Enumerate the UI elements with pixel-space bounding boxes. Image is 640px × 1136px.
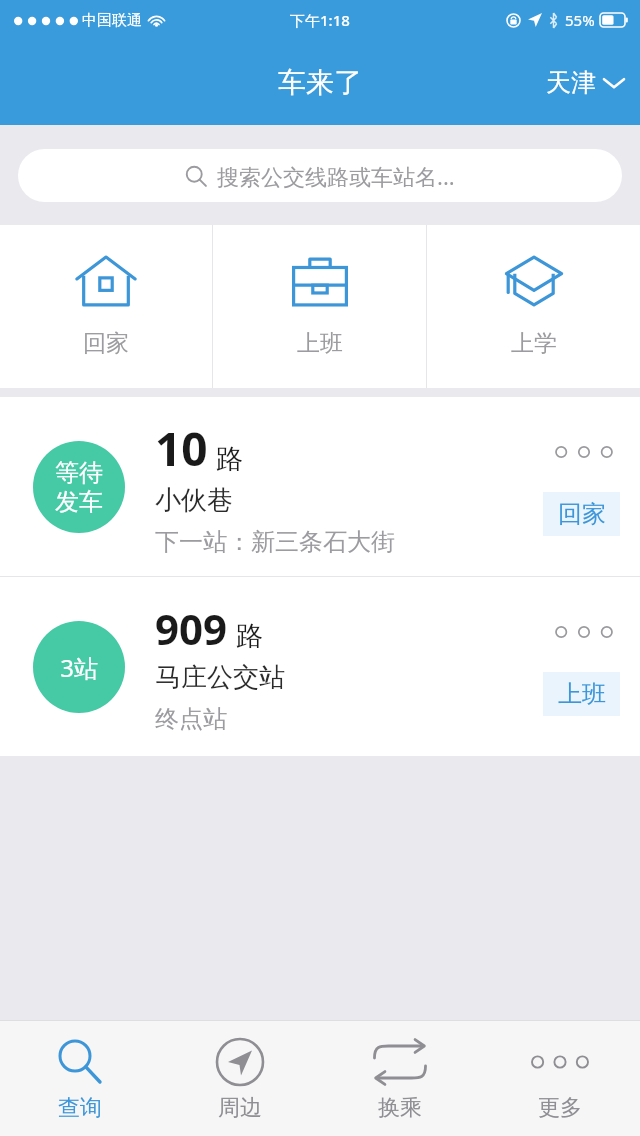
staticText: 天津	[546, 67, 596, 98]
staticText: 小伙巷	[155, 484, 233, 517]
button[interactable]: 上班	[543, 672, 620, 716]
staticText: 下一站：新三条石大街	[155, 527, 395, 557]
staticText: 查询	[58, 1094, 102, 1122]
staticText: 55%	[565, 10, 595, 30]
staticText: 路	[236, 619, 263, 653]
staticText: 终点站	[155, 704, 227, 734]
staticText: 909	[155, 600, 228, 657]
staticText: 等待 发车	[55, 458, 103, 517]
button[interactable]: 等待 发车	[0, 397, 640, 576]
button[interactable]: Go home	[0, 225, 212, 388]
staticText: 上学	[511, 329, 557, 358]
staticText: 下午1:18	[290, 10, 350, 30]
staticText: 上班	[558, 679, 606, 709]
button[interactable]: 周边	[160, 1021, 320, 1136]
staticText: 回家	[83, 329, 129, 358]
button[interactable]: 回家	[543, 492, 620, 536]
staticText: 更多	[538, 1094, 582, 1122]
staticText: 路	[216, 442, 243, 476]
button[interactable]: 搜索公交线路或车站名...	[18, 149, 622, 202]
button[interactable]: 查询	[0, 1021, 160, 1136]
staticText: 上班	[297, 329, 343, 358]
staticText: 3站	[60, 651, 98, 684]
button[interactable]: 天津	[530, 57, 640, 108]
staticText: 换乘	[378, 1094, 422, 1122]
button[interactable]: Go to work	[213, 225, 426, 388]
staticText: 车来了	[278, 65, 362, 100]
staticText: 10	[155, 417, 208, 480]
staticText: 马庄公交站	[155, 661, 285, 694]
button[interactable]: 更多	[480, 1021, 640, 1136]
button[interactable]: More options	[548, 438, 620, 466]
button[interactable]: Go to school	[427, 225, 640, 388]
staticText: 中国联通	[82, 11, 142, 30]
staticText: 周边	[218, 1094, 262, 1122]
button[interactable]: More options	[548, 618, 620, 646]
button[interactable]: 3站	[0, 577, 640, 756]
staticText: 回家	[558, 499, 606, 529]
button[interactable]: 换乘	[320, 1021, 480, 1136]
staticText: 搜索公交线路或车站名...	[217, 161, 455, 191]
